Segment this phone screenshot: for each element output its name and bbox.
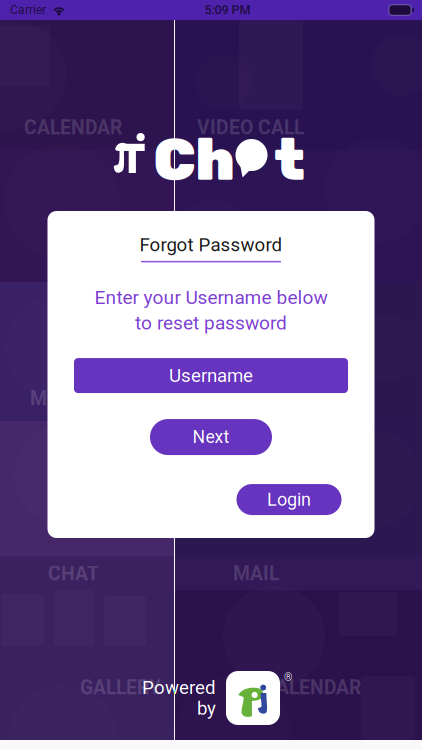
staticText: M (30, 387, 47, 410)
button[interactable]: Username (74, 358, 348, 393)
staticText: t (274, 126, 305, 194)
staticText: 5:09 PM (204, 3, 250, 17)
staticText: Next (192, 427, 229, 447)
staticText: Login (267, 489, 311, 510)
staticText: Ch (153, 126, 234, 194)
staticText: Carrier (10, 3, 46, 17)
staticText: ® (284, 671, 292, 683)
staticText: CALENDAR (263, 676, 361, 699)
staticText: by (197, 697, 216, 719)
button[interactable]: Next (150, 419, 272, 455)
staticText: GALLERY (80, 676, 161, 699)
staticText: VIDEO CALL (197, 116, 304, 139)
staticText: Powered (142, 677, 216, 698)
button[interactable]: Login (236, 484, 341, 515)
staticText: MAIL (233, 562, 279, 585)
staticText: Enter your Username below (94, 286, 327, 309)
staticText: Username (169, 365, 253, 386)
staticText: to reset password (135, 312, 287, 334)
staticText: CHAT (48, 562, 99, 585)
staticText: Forgot Password (139, 234, 282, 256)
staticText: CALENDAR (24, 116, 122, 139)
